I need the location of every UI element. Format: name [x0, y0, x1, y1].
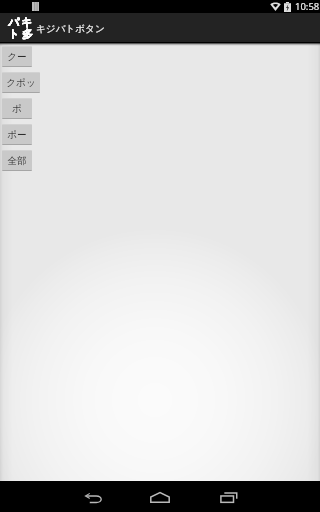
button[interactable]: クポッ — [2, 72, 40, 93]
staticText: パ — [8, 15, 20, 29]
staticText: ポ — [12, 103, 22, 115]
staticText: パ — [8, 15, 20, 29]
staticText: ト — [8, 27, 20, 41]
staticText: ポー — [7, 129, 27, 141]
staticText: 多 — [22, 27, 33, 41]
button[interactable]: 全部 — [2, 150, 32, 171]
staticText: ト — [8, 27, 20, 41]
button[interactable]: Back — [75, 481, 111, 512]
staticText: キ — [21, 15, 33, 29]
staticText: 10:58 — [295, 0, 320, 13]
staticText: クー — [7, 51, 27, 63]
button[interactable]: Recents — [211, 481, 247, 512]
staticText: ト — [8, 27, 20, 41]
button[interactable]: クー — [2, 46, 32, 67]
staticText: キ — [21, 15, 33, 29]
staticText: キジバトボタン — [36, 23, 105, 35]
staticText: 多 — [22, 27, 33, 41]
button[interactable]: ポ — [2, 98, 32, 119]
staticText: パ — [8, 15, 20, 29]
staticText: キ — [21, 15, 33, 29]
staticText: クポッ — [6, 77, 36, 89]
staticText: 全部 — [7, 155, 27, 167]
button[interactable]: Home — [142, 481, 178, 512]
staticText: 多 — [22, 27, 33, 41]
button[interactable]: ポー — [2, 124, 32, 145]
